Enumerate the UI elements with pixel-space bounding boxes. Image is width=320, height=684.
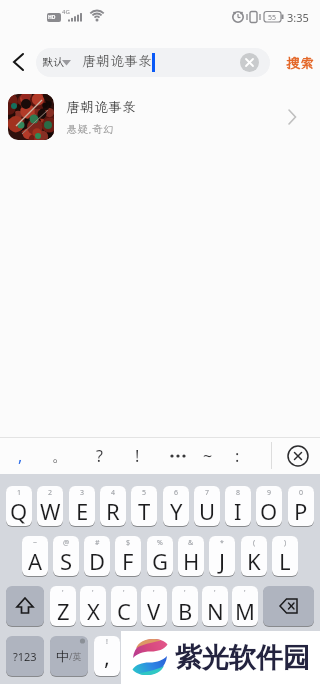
staticText: @	[63, 538, 70, 548]
button[interactable]: 3	[69, 486, 95, 526]
button[interactable]: '	[50, 586, 76, 626]
staticText: 55	[268, 13, 277, 23]
button[interactable]: $	[115, 536, 141, 576]
button[interactable]: ?123	[6, 636, 44, 676]
staticText: '	[92, 588, 94, 598]
staticText: '	[62, 588, 64, 598]
button[interactable]: '	[141, 586, 167, 626]
button[interactable]: ~	[22, 536, 48, 576]
button[interactable]: *	[209, 536, 235, 576]
button[interactable]	[6, 586, 44, 626]
staticText: S	[60, 546, 73, 576]
button[interactable]: 6	[163, 486, 189, 526]
staticText: '	[153, 588, 155, 598]
button[interactable]: :	[223, 437, 251, 474]
staticText: W	[40, 496, 61, 526]
button[interactable]	[6, 48, 34, 76]
staticText: &	[188, 538, 194, 548]
staticText: 3	[80, 488, 85, 498]
staticText: 默认	[42, 55, 64, 69]
staticText: ,	[18, 445, 23, 467]
button[interactable]: '	[232, 586, 258, 626]
staticText: 4	[111, 488, 116, 498]
staticText: P	[294, 496, 308, 526]
button[interactable]: &	[178, 536, 204, 576]
button[interactable]: #	[84, 536, 110, 576]
staticText: M	[235, 596, 255, 626]
staticText: 1	[17, 488, 22, 498]
button[interactable]	[240, 53, 259, 72]
staticText: Z	[57, 596, 70, 626]
button[interactable]: '	[172, 586, 198, 626]
button[interactable]: 0	[288, 486, 314, 526]
staticText: ~	[203, 445, 213, 467]
button[interactable]: '	[80, 586, 106, 626]
button[interactable]: 9	[256, 486, 282, 526]
button[interactable]: )	[272, 536, 298, 576]
staticText: V	[147, 596, 161, 626]
staticText: *	[220, 538, 224, 548]
button[interactable]: ?	[85, 437, 113, 474]
staticText: E	[76, 496, 89, 526]
button[interactable]: ,	[6, 437, 34, 474]
button[interactable]: '	[202, 586, 228, 626]
button[interactable]: 2	[37, 486, 63, 526]
button[interactable]: (	[241, 536, 267, 576]
staticText: C	[117, 596, 131, 626]
button[interactable]	[284, 442, 311, 469]
staticText: F	[122, 546, 134, 576]
staticText: A	[28, 546, 43, 576]
staticText: )	[284, 538, 287, 548]
staticText: 悬疑,奇幻	[66, 122, 114, 136]
staticText: Q	[10, 496, 28, 526]
button[interactable]: 7	[194, 486, 220, 526]
staticText: %	[157, 538, 163, 548]
button[interactable]: 4	[100, 486, 126, 526]
staticText: 6	[174, 488, 179, 498]
staticText: #	[95, 538, 100, 548]
button[interactable]: 5	[131, 486, 157, 526]
staticText: L	[279, 546, 291, 576]
button[interactable]: ~	[194, 437, 222, 474]
staticText: D	[89, 546, 106, 576]
staticText: U	[199, 496, 216, 526]
staticText: '	[184, 588, 186, 598]
staticText: K	[247, 546, 261, 576]
staticText: !	[135, 445, 140, 467]
staticText: 3:35	[287, 10, 309, 25]
staticText: 8	[236, 488, 241, 498]
button[interactable]: '	[111, 586, 137, 626]
staticText: 紫光软件园	[175, 641, 310, 675]
staticText: N	[207, 596, 224, 626]
button[interactable]: !	[94, 636, 120, 676]
button[interactable]: 搜索	[280, 48, 320, 77]
staticText: T	[138, 496, 151, 526]
staticText: 0	[299, 488, 304, 498]
staticText: 中	[56, 648, 69, 664]
staticText: 9	[267, 488, 272, 498]
button[interactable]: 唐朝诡事录	[0, 86, 320, 148]
staticText: 7	[205, 488, 210, 498]
staticText: !	[106, 637, 108, 647]
button[interactable]: 1	[6, 486, 32, 526]
staticText: ?	[96, 445, 103, 467]
staticText: /英	[69, 650, 82, 662]
button[interactable]: @	[53, 536, 79, 576]
staticText: 唐朝诡事录	[82, 52, 152, 70]
button[interactable]	[263, 586, 314, 626]
staticText: '	[214, 588, 216, 598]
staticText: R	[106, 496, 120, 526]
button[interactable]: 。	[46, 437, 74, 474]
button[interactable]: 中	[50, 636, 88, 676]
staticText: 唐朝诡事录	[66, 98, 136, 116]
button[interactable]: 默认	[36, 48, 270, 77]
button[interactable]: 8	[225, 486, 251, 526]
button[interactable]: !	[123, 437, 151, 474]
staticText: 。	[52, 446, 68, 466]
staticText: J	[219, 546, 226, 576]
button[interactable]: %	[147, 536, 173, 576]
staticText: I	[234, 496, 242, 526]
staticText: X	[87, 596, 100, 626]
staticText: (	[253, 538, 256, 548]
staticText: O	[260, 496, 278, 526]
